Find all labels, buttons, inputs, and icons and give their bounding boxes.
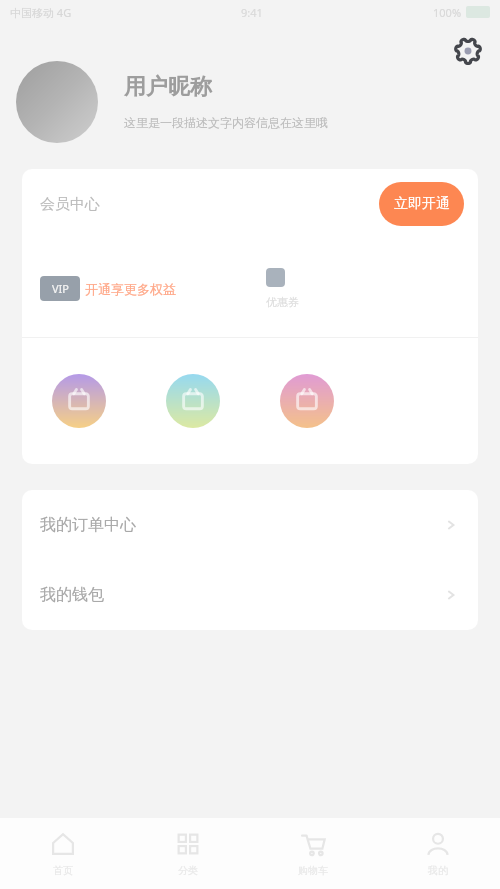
staticText: 会员中心 — [40, 195, 100, 214]
staticText: 我的 — [428, 864, 448, 877]
button[interactable]: Avatar — [16, 61, 98, 143]
staticText: 这里是一段描述文字内容信息在这里哦 — [124, 115, 328, 130]
button[interactable]: 我的钱包 — [40, 560, 458, 630]
staticText: 我的钱包 — [40, 585, 104, 605]
button[interactable]: Wallet — [136, 338, 250, 464]
staticText: 首页 — [53, 864, 73, 877]
staticText: VIP — [52, 281, 69, 296]
button[interactable]: Points — [250, 338, 364, 464]
staticText: 分类 — [178, 864, 198, 877]
staticText: 中国移动 4G — [10, 5, 72, 20]
staticText: 开通享更多权益 — [85, 281, 176, 297]
button[interactable]: 购物车 — [250, 818, 375, 889]
staticText: 9:41 — [241, 5, 263, 20]
button[interactable]: Recharge — [22, 338, 136, 464]
staticText: 100% — [433, 5, 462, 20]
button[interactable]: 我的订单中心 — [40, 490, 458, 560]
button[interactable]: Settings — [450, 33, 486, 69]
button[interactable]: 分类 — [125, 818, 250, 889]
staticText: 我的订单中心 — [40, 515, 136, 535]
button[interactable]: 立即开通 — [379, 182, 464, 226]
staticText: 优惠券 — [266, 295, 299, 309]
staticText: 购物车 — [298, 864, 328, 877]
staticText: 立即开通 — [394, 195, 450, 213]
staticText: 用户昵称 — [124, 73, 212, 101]
button[interactable]: 首页 — [0, 818, 125, 889]
